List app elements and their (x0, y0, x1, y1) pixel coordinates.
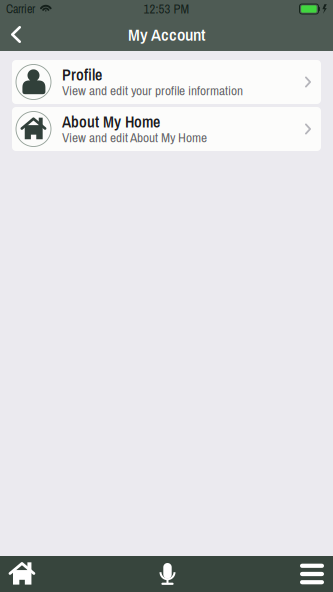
button[interactable]: About My Home (12, 107, 321, 151)
button[interactable]: Menu (294, 556, 330, 592)
staticText: View and edit About My Home (62, 130, 207, 145)
button[interactable]: Home (3, 556, 41, 592)
staticText: 12:53 PM (143, 0, 189, 18)
staticText: About My Home (62, 113, 160, 130)
staticText: Profile (62, 66, 102, 83)
button[interactable]: Profile (12, 60, 321, 104)
staticText: My Account (128, 23, 205, 46)
button[interactable]: Voice search (149, 556, 185, 592)
staticText: View and edit your profile information (62, 83, 243, 98)
button[interactable]: Back (0, 18, 32, 51)
staticText: Carrier (6, 1, 35, 17)
